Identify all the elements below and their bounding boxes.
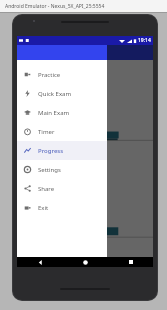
button[interactable]: Settings (17, 160, 107, 179)
staticText: Share (38, 185, 55, 193)
staticText: Quick Exam (38, 90, 72, 98)
button[interactable]: Exit (17, 198, 107, 217)
staticText: Android Emulator - Nexus_5X_API_25:5554 (5, 3, 105, 10)
button[interactable]: Back (17, 257, 63, 267)
staticText: Exit (38, 204, 49, 212)
staticText: Main Exam (38, 109, 70, 117)
staticText: Practice (38, 71, 61, 79)
staticText: Progress (38, 147, 64, 155)
button[interactable]: Quick Exam (17, 84, 107, 103)
button[interactable]: Recent apps (108, 257, 153, 267)
button[interactable]: Practice (17, 65, 107, 84)
staticText: Timer (38, 128, 55, 136)
staticText: 19:14 (138, 37, 151, 44)
staticText: Settings (38, 166, 61, 174)
button[interactable]: Progress (17, 141, 107, 160)
button[interactable]: Home (63, 257, 108, 267)
button[interactable]: Main Exam (17, 103, 107, 122)
button[interactable]: Share (17, 179, 107, 198)
button[interactable]: Timer (17, 122, 107, 141)
